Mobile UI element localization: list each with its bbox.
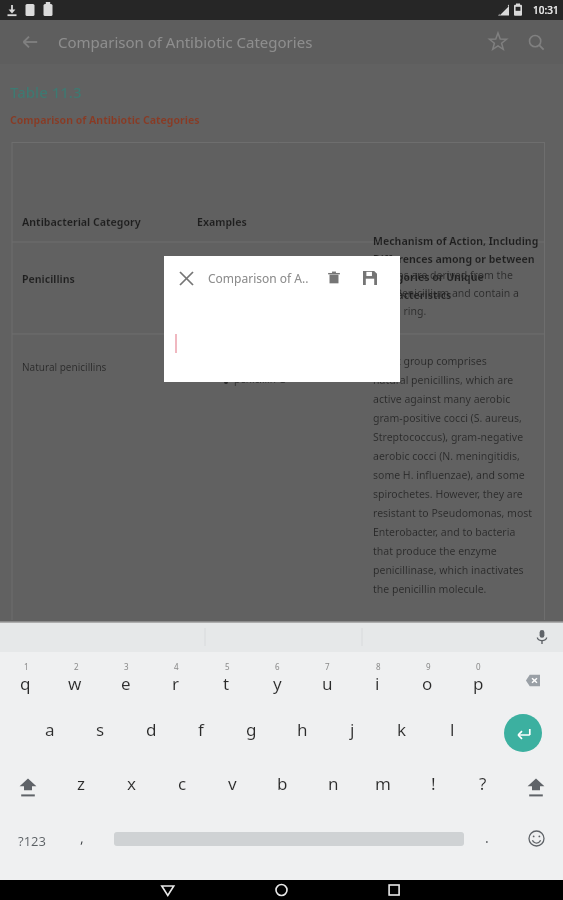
button[interactable]: x [109, 766, 153, 800]
staticText: c [178, 772, 187, 795]
staticText: v [228, 772, 237, 795]
button[interactable]: Backspace [516, 666, 544, 694]
button[interactable]: k [380, 712, 424, 746]
staticText: Table 11.3 [10, 82, 82, 102]
staticText: k [397, 718, 407, 741]
button[interactable]: e [104, 666, 148, 700]
staticText: y [273, 672, 282, 695]
staticText: 6 [275, 661, 280, 672]
staticText: Examples [197, 215, 247, 229]
staticText: i [375, 672, 380, 695]
staticText: u [322, 672, 333, 695]
staticText: h [297, 718, 308, 741]
button[interactable]: w [53, 666, 97, 700]
staticText: b [277, 772, 288, 795]
button[interactable]: n [311, 766, 355, 800]
staticText: w [68, 672, 82, 695]
staticText: , [80, 828, 84, 847]
button[interactable]: Voice input [529, 624, 555, 650]
button[interactable]: ?123 [4, 822, 60, 860]
staticText: ?123 [18, 832, 46, 850]
staticText: g [246, 718, 257, 741]
button[interactable]: d [129, 712, 173, 746]
button[interactable]: 5 [205, 649, 249, 683]
button[interactable]: p [456, 666, 500, 700]
staticText: Comparison of A.. [208, 270, 316, 286]
button[interactable]: b [260, 766, 304, 800]
button[interactable]: Save [352, 256, 388, 300]
button[interactable]: t [204, 666, 248, 700]
button[interactable]: Shift [514, 766, 558, 808]
button[interactable]: 4 [154, 649, 198, 683]
button[interactable]: ? [461, 766, 505, 800]
staticText: 8 [376, 661, 381, 672]
button[interactable]: o [405, 666, 449, 700]
button[interactable]: i [355, 666, 399, 700]
button[interactable]: j [330, 712, 374, 746]
button[interactable]: Search [517, 23, 555, 61]
staticText: r [172, 672, 180, 695]
button[interactable]: Shift [6, 766, 50, 808]
button[interactable]: Delete [316, 256, 352, 300]
staticText: t [223, 672, 230, 695]
staticText: Comparison of Antibiotic Categories [58, 32, 313, 52]
button[interactable]: z [59, 766, 103, 800]
button[interactable]: f [179, 712, 223, 746]
staticText: 0 [476, 661, 481, 672]
staticText: Mechanism of Action, Including Differenc… [373, 234, 539, 302]
staticText: d [146, 718, 157, 741]
staticText: 5 [225, 661, 230, 672]
button[interactable]: 3 [104, 649, 148, 683]
staticText: . [485, 828, 489, 847]
button[interactable]: a [28, 712, 72, 746]
button[interactable]: 2 [54, 649, 98, 683]
staticText: q [20, 672, 31, 695]
button[interactable]: g [229, 712, 273, 746]
button[interactable]: Emoji [524, 826, 548, 850]
button[interactable]: ! [411, 766, 455, 800]
staticText: e [121, 672, 131, 695]
staticText: 7 [325, 661, 330, 672]
button[interactable]: r [154, 666, 198, 700]
button[interactable]: . [469, 822, 505, 852]
button[interactable]: 0 [456, 649, 500, 683]
button[interactable]: v [210, 766, 254, 800]
staticText: 10:31 [533, 3, 559, 17]
button[interactable]: 7 [305, 649, 349, 683]
button[interactable]: l [430, 712, 474, 746]
staticText: a [45, 718, 55, 741]
button[interactable]: 1 [4, 649, 48, 683]
staticText: x [127, 772, 136, 795]
staticText: Natural penicillins [22, 360, 107, 374]
button[interactable]: , [64, 822, 100, 852]
button[interactable]: c [160, 766, 204, 800]
button[interactable]: Back [12, 24, 48, 60]
staticText: 1 [24, 661, 29, 672]
button[interactable]: 8 [356, 649, 400, 683]
staticText: z [77, 772, 85, 795]
staticText: Comparison of Antibiotic Categories [10, 113, 200, 127]
staticText: Penicillins [22, 272, 75, 286]
button[interactable]: q [3, 666, 47, 700]
staticText: m [375, 772, 391, 795]
button[interactable]: Enter [504, 714, 542, 752]
button[interactable]: h [280, 712, 324, 746]
button[interactable]: Favorite [479, 23, 517, 61]
button[interactable]: u [305, 666, 349, 700]
button[interactable]: 9 [406, 649, 450, 683]
staticText: o [422, 672, 433, 695]
button[interactable]: 6 [255, 649, 299, 683]
button[interactable]: m [361, 766, 405, 800]
button[interactable]: y [255, 666, 299, 700]
staticText: …cillins are derived from the …us Penici… [373, 268, 519, 318]
staticText: j [350, 718, 355, 741]
staticText: Antibacterial Category [22, 215, 141, 229]
button[interactable]: Close [164, 256, 208, 300]
staticText: l [450, 718, 455, 741]
staticText: 3 [124, 661, 129, 672]
staticText: f [198, 718, 204, 741]
button[interactable]: s [78, 712, 122, 746]
staticText: 2 [74, 661, 79, 672]
staticText: p [473, 672, 484, 695]
